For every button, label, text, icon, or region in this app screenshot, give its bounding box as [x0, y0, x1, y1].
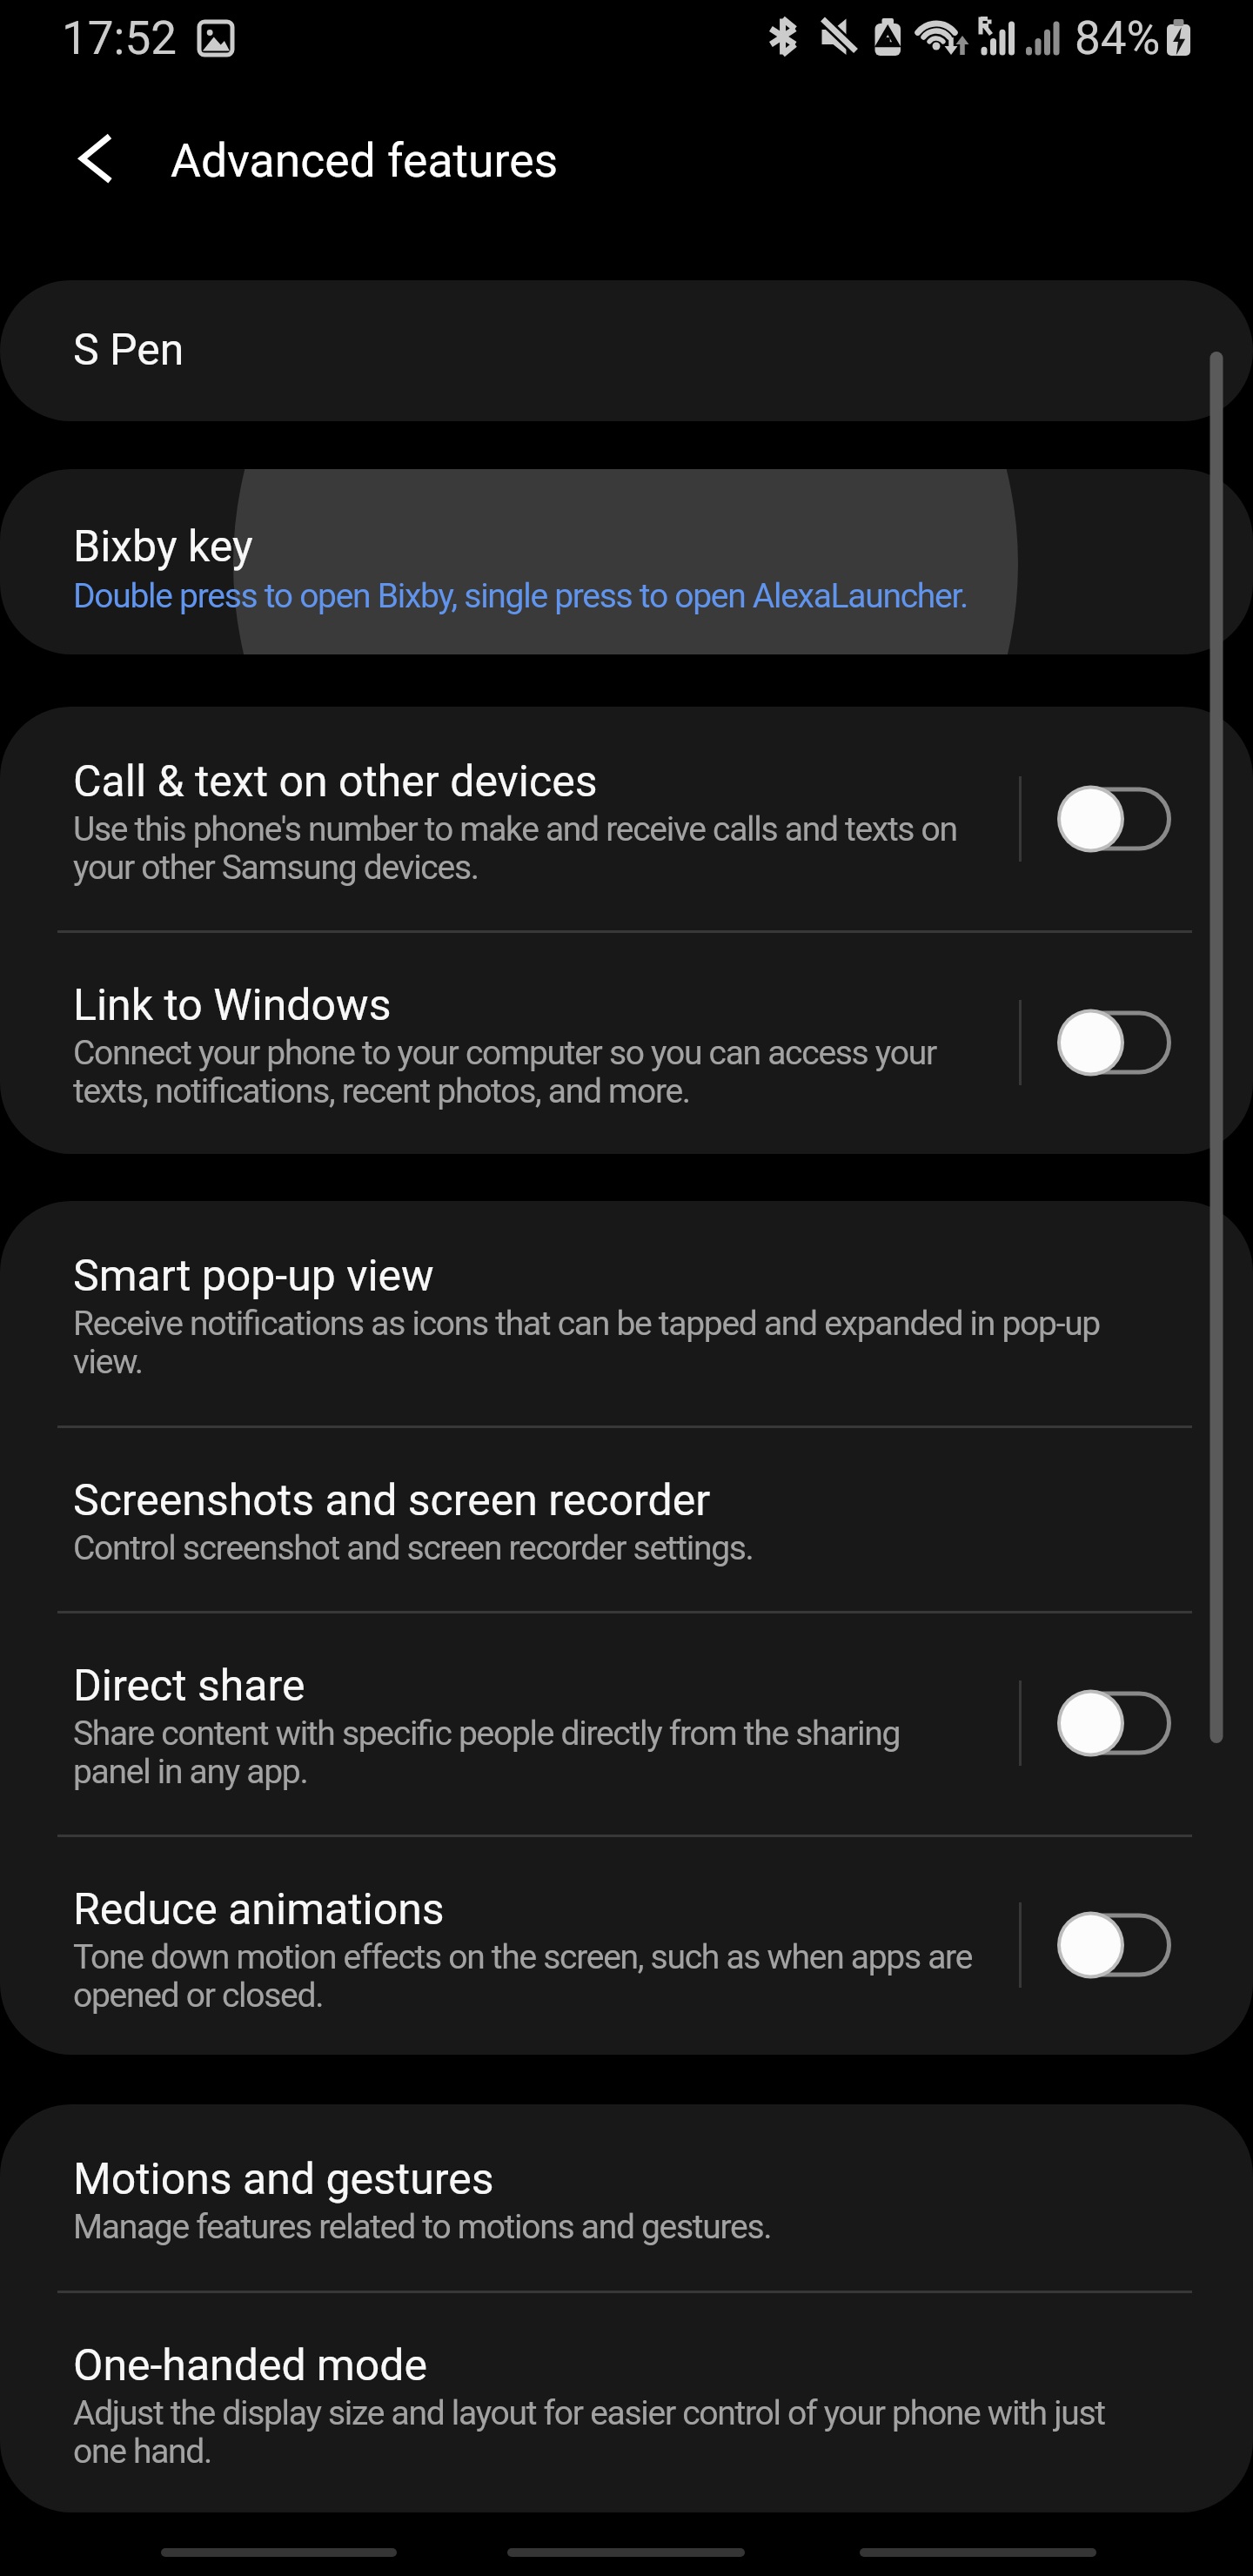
staticText: 17:52: [62, 11, 177, 65]
button[interactable]: Toggle switch, off: [1031, 1879, 1205, 2011]
button[interactable]: Direct share: [0, 1611, 1253, 1835]
staticText: Tone down motion effects on the screen, …: [73, 1938, 982, 2015]
staticText: Motions and gestures: [73, 2154, 1142, 2205]
button[interactable]: Smart pop-up view: [0, 1201, 1253, 1426]
staticText: Bixby key: [73, 521, 1142, 573]
button[interactable]: S Pen: [0, 280, 1253, 421]
staticText: Smart pop-up view: [73, 1251, 1142, 1302]
button[interactable]: Link to Windows: [0, 930, 1253, 1154]
button[interactable]: Toggle switch, off: [1031, 976, 1205, 1109]
button[interactable]: Call & text on other devices: [0, 707, 1253, 930]
staticText: Double press to open Bixby, single press…: [73, 577, 1142, 615]
button[interactable]: Screenshots and screen recorder: [0, 1426, 1253, 1611]
staticText: Link to Windows: [73, 980, 982, 1031]
staticText: Screenshots and screen recorder: [73, 1475, 1142, 1526]
staticText: Advanced features: [171, 133, 559, 188]
button[interactable]: Toggle switch, off: [1031, 1657, 1205, 1789]
staticText: Adjust the display size and layout for e…: [73, 2394, 1142, 2471]
staticText: Call & text on other devices: [73, 756, 982, 808]
button[interactable]: One-handed mode: [0, 2291, 1253, 2512]
button[interactable]: Toggle switch, off: [1031, 753, 1205, 885]
staticText: Connect your phone to your computer so y…: [73, 1034, 982, 1110]
staticText: Control screenshot and screen recorder s…: [73, 1529, 1142, 1567]
staticText: One-handed mode: [73, 2340, 1142, 2392]
staticText: 84%: [1075, 11, 1161, 65]
staticText: Receive notifications as icons that can …: [73, 1305, 1142, 1381]
staticText: Share content with specific people direc…: [73, 1714, 982, 1791]
staticText: Direct share: [73, 1660, 982, 1712]
staticText: Reduce animations: [73, 1884, 982, 1935]
button[interactable]: Navigate up: [43, 127, 147, 231]
button[interactable]: Bixby key: [0, 469, 1253, 654]
staticText: Manage features related to motions and g…: [73, 2208, 1142, 2246]
button[interactable]: Reduce animations: [0, 1835, 1253, 2055]
staticText: Use this phone's number to make and rece…: [73, 810, 982, 887]
staticText: S Pen: [73, 325, 1142, 376]
button[interactable]: Motions and gestures: [0, 2104, 1253, 2291]
